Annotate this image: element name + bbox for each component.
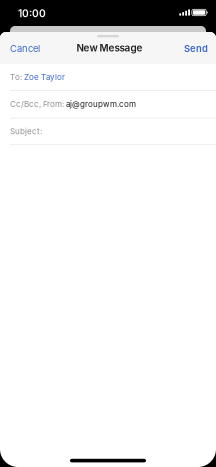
staticText: Zoe Taylor (24, 72, 65, 82)
staticText: Cc/Bcc, From: (10, 99, 66, 109)
staticText: Cancel (10, 43, 40, 54)
staticText: aj@groupwm.com (66, 99, 136, 109)
staticText: Subject: (10, 127, 42, 136)
staticText: Send (184, 43, 208, 54)
staticText: 10:00 (18, 7, 46, 20)
staticText: New Message (76, 42, 142, 54)
staticText: To: (10, 72, 24, 82)
button[interactable]: Cancel (10, 40, 46, 57)
button[interactable]: Send (178, 40, 208, 57)
